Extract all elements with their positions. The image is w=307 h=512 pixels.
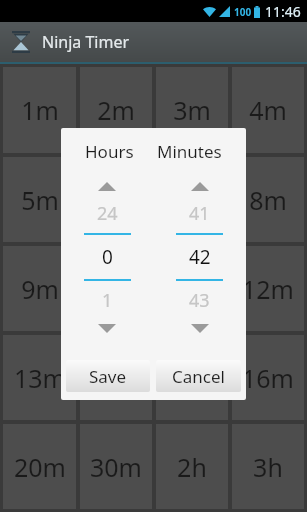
- button[interactable]: Decrement: [183, 319, 217, 337]
- staticText: 8m: [249, 183, 287, 217]
- staticText: 3h: [253, 450, 283, 484]
- staticText: Hours: [85, 140, 134, 163]
- staticText: 15m: [166, 361, 218, 395]
- staticText: 30m: [90, 450, 142, 484]
- staticText: 100: [234, 5, 252, 19]
- staticText: 11m: [166, 272, 218, 306]
- button[interactable]: 3m: [156, 67, 228, 153]
- button[interactable]: 6m: [80, 157, 152, 242]
- button[interactable]: 2h: [156, 424, 228, 509]
- staticText: Cancel: [172, 365, 225, 388]
- staticText: 20m: [14, 450, 66, 484]
- button[interactable]: 13m: [3, 335, 76, 420]
- staticText: 4m: [249, 93, 287, 127]
- staticText: 9m: [21, 272, 59, 306]
- button[interactable]: 9m: [3, 246, 76, 331]
- staticText: Minutes: [157, 140, 222, 163]
- button[interactable]: Increment: [183, 177, 217, 195]
- staticText: 11:46: [265, 2, 301, 21]
- staticText: Save: [89, 365, 127, 388]
- button[interactable]: 7m: [156, 157, 228, 242]
- button[interactable]: 20m: [3, 424, 76, 509]
- button[interactable]: 10m: [80, 246, 152, 331]
- button[interactable]: 14m: [80, 335, 152, 420]
- button[interactable]: 3h: [232, 424, 304, 509]
- staticText: 0: [102, 244, 113, 270]
- staticText: 3m: [173, 93, 211, 127]
- button[interactable]: 5m: [3, 157, 76, 242]
- staticText: 12m: [242, 272, 294, 306]
- staticText: 43: [189, 288, 210, 313]
- staticText: 2m: [97, 93, 135, 127]
- button[interactable]: Cancel: [156, 360, 241, 392]
- staticText: 2h: [177, 450, 207, 484]
- button[interactable]: 30m: [80, 424, 152, 509]
- staticText: 16m: [242, 361, 294, 395]
- staticText: 24: [97, 201, 118, 226]
- button[interactable]: Save: [66, 360, 150, 392]
- button[interactable]: 11m: [156, 246, 228, 331]
- button[interactable]: Decrement: [90, 319, 124, 337]
- button[interactable]: 12m: [232, 246, 304, 331]
- button[interactable]: 15m: [156, 335, 228, 420]
- button[interactable]: 4m: [232, 67, 304, 153]
- staticText: 5m: [21, 183, 59, 217]
- staticText: 13m: [14, 361, 66, 395]
- staticText: 6m: [97, 183, 135, 217]
- button[interactable]: 2m: [80, 67, 152, 153]
- button[interactable]: 1m: [3, 67, 76, 153]
- staticText: 14m: [90, 361, 142, 395]
- staticText: 10m: [90, 272, 142, 306]
- button[interactable]: 8m: [232, 157, 304, 242]
- staticText: 1: [102, 288, 113, 313]
- staticText: 7m: [173, 183, 211, 217]
- staticText: 42: [189, 244, 211, 270]
- staticText: Ninja Timer: [42, 31, 130, 53]
- button[interactable]: 16m: [232, 335, 304, 420]
- staticText: 1m: [21, 93, 59, 127]
- button[interactable]: Increment: [90, 177, 124, 195]
- staticText: 41: [189, 201, 210, 226]
